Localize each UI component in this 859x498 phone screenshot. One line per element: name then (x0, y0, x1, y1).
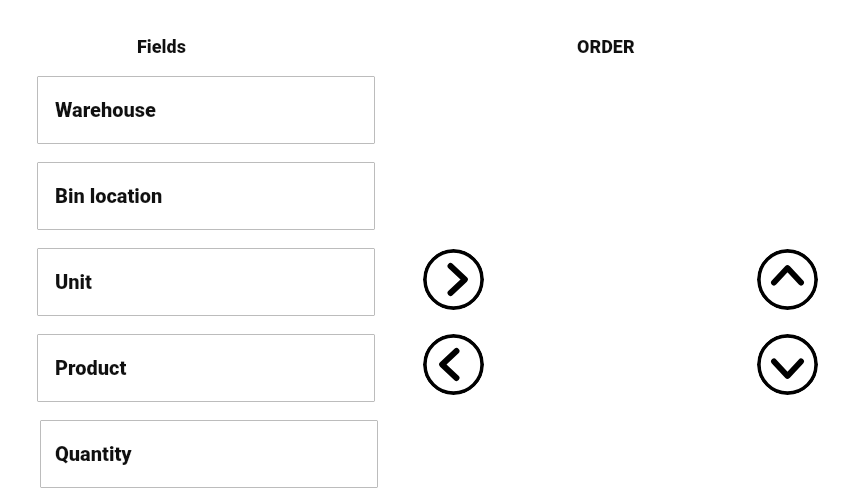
button[interactable]: Product (37, 334, 375, 402)
button[interactable]: Move up (757, 249, 818, 310)
button[interactable]: Quantity (40, 420, 378, 488)
staticText: ORDER (577, 36, 635, 57)
button[interactable]: Add field to order (423, 249, 484, 310)
button[interactable]: Warehouse (37, 76, 375, 144)
button[interactable]: Remove field from order (423, 334, 484, 395)
button[interactable]: Move down (757, 334, 818, 395)
staticText: Fields (137, 36, 186, 57)
staticText: Product (55, 356, 127, 379)
staticText: Warehouse (55, 98, 156, 121)
staticText: Bin location (55, 184, 163, 207)
button[interactable]: Unit (37, 248, 375, 316)
staticText: Unit (55, 270, 92, 293)
button[interactable]: Bin location (37, 162, 375, 230)
staticText: Quantity (55, 442, 132, 465)
